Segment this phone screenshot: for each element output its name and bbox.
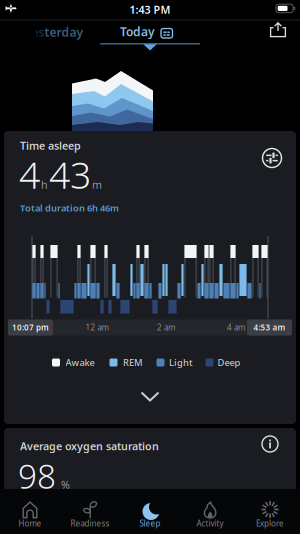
staticText: Awake (65, 356, 94, 369)
staticText: Explore (256, 518, 284, 529)
staticText: 10:07 pm (12, 322, 49, 333)
staticText: Light (169, 356, 193, 369)
staticText: 2 am (157, 322, 175, 333)
button[interactable] (260, 146, 284, 170)
staticText: m (92, 177, 102, 192)
staticText: 4 (19, 149, 40, 199)
button[interactable]: Readiness (62, 496, 118, 534)
staticText: Time asleep (20, 138, 81, 153)
staticText: Total duration 6h 46m (20, 202, 119, 214)
staticText: 4 am (227, 322, 245, 333)
button[interactable]: Activity (182, 496, 238, 534)
staticText: Deep (217, 356, 240, 369)
button[interactable]: Today (104, 22, 184, 42)
button[interactable] (132, 387, 168, 407)
staticText: 12 am (85, 322, 108, 333)
staticText: REM (123, 356, 143, 369)
staticText: h (41, 177, 48, 192)
button[interactable]: Yesterday (8, 21, 100, 43)
staticText: Today (120, 23, 155, 39)
staticText: 98 (18, 454, 56, 498)
staticText: 43 (49, 149, 91, 199)
button[interactable]: Home (2, 496, 58, 534)
staticText: Readiness (70, 518, 109, 529)
button[interactable] (262, 20, 292, 48)
button[interactable]: Explore (242, 496, 298, 534)
staticText: % (61, 478, 70, 492)
staticText: Yesterday (24, 24, 83, 40)
staticText: 1:43 PM (129, 2, 170, 17)
staticText: 4:53 am (253, 322, 285, 333)
staticText: Average oxygen saturation (20, 439, 159, 453)
staticText: Home (18, 518, 41, 529)
staticText: Sleep (139, 518, 160, 529)
staticText: Activity (196, 518, 223, 529)
button[interactable]: Sleep (122, 496, 178, 534)
button[interactable] (259, 433, 281, 455)
